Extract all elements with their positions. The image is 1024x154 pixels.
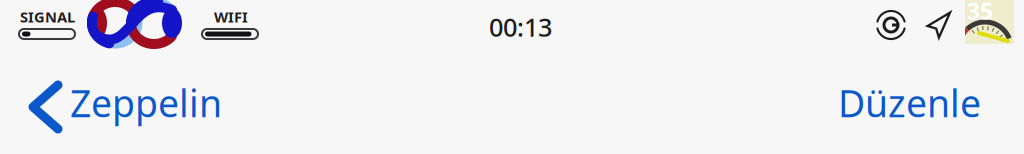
staticText: Düzenle: [838, 78, 981, 128]
button[interactable]: Düzenle: [832, 70, 987, 136]
button[interactable]: Zeppelin: [25, 66, 241, 130]
staticText: Zeppelin: [70, 78, 222, 128]
staticText: 35: [967, 0, 993, 26]
staticText: SIGNAL: [20, 7, 75, 26]
staticText: 00:13: [489, 10, 552, 44]
staticText: WIFI: [214, 7, 248, 26]
